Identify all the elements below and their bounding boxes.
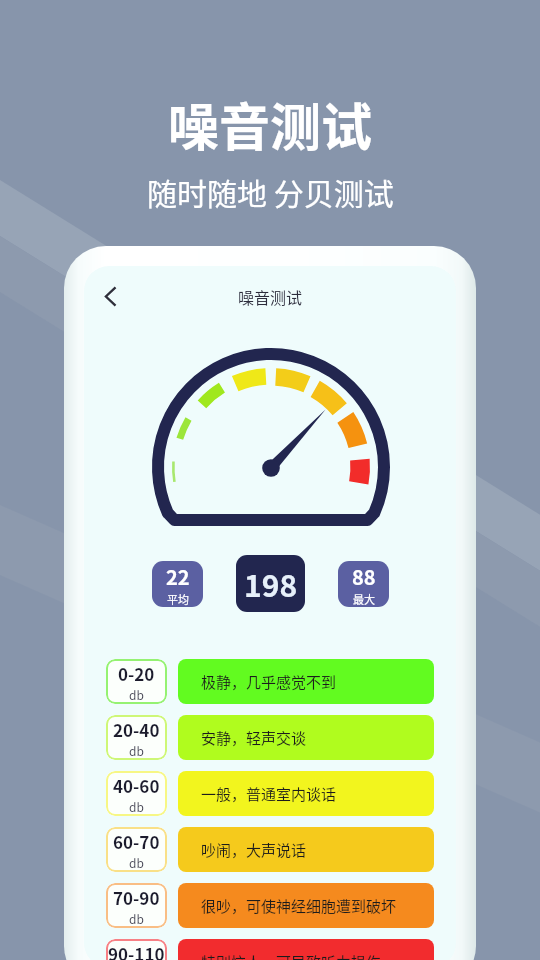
staticText: 60-70 [113, 829, 160, 854]
button[interactable]: 198 [236, 555, 305, 612]
staticText: 20-40 [113, 717, 160, 742]
staticText: 90-110 [108, 941, 165, 960]
staticText: 22 [166, 562, 190, 591]
staticText: 88 [352, 562, 376, 591]
button[interactable]: 60-70 [106, 827, 434, 872]
staticText: 噪音测试 [168, 87, 373, 161]
staticText: db [129, 742, 144, 759]
staticText: 平均 [167, 591, 189, 607]
button[interactable]: 70-90 [106, 883, 434, 928]
staticText: 噪音测试 [238, 285, 303, 308]
staticText: db [129, 798, 144, 815]
staticText: 随时随地 分贝测试 [147, 170, 394, 213]
staticText: 特别恼人，可导致听力损伤 [201, 951, 382, 960]
staticText: db [129, 686, 144, 703]
staticText: 0-20 [118, 661, 155, 686]
button[interactable]: 22 [152, 561, 203, 607]
button[interactable]: 90-110 [106, 939, 434, 960]
staticText: 198 [244, 562, 298, 605]
button[interactable]: Back [92, 278, 128, 314]
staticText: db [129, 854, 144, 871]
staticText: 40-60 [113, 773, 160, 798]
staticText: 吵闹，大声说话 [201, 839, 307, 861]
staticText: 70-90 [113, 885, 160, 910]
button[interactable]: 40-60 [106, 771, 434, 816]
staticText: db [129, 910, 144, 927]
staticText: 安静，轻声交谈 [201, 727, 307, 749]
button[interactable]: 88 [338, 561, 389, 607]
staticText: 一般，普通室内谈话 [201, 783, 337, 805]
staticText: 最大 [353, 591, 375, 607]
button[interactable]: 0-20 [106, 659, 434, 704]
staticText: 很吵，可使神经细胞遭到破坏 [201, 895, 397, 917]
button[interactable]: 20-40 [106, 715, 434, 760]
staticText: 极静，几乎感觉不到 [201, 671, 337, 693]
